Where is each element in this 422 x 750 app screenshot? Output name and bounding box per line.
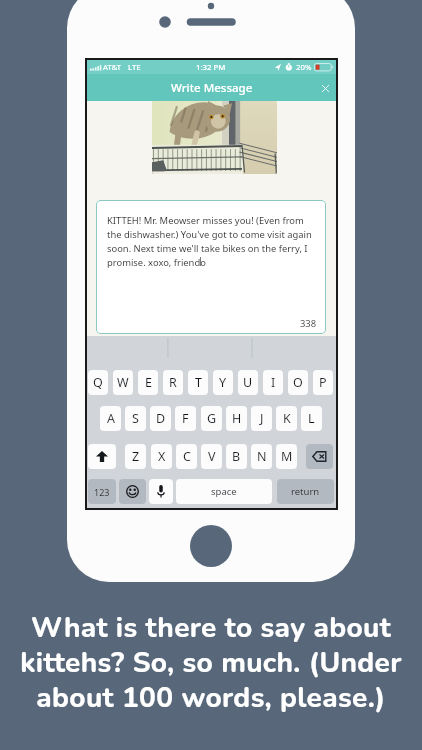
staticText: U: [243, 374, 253, 391]
button[interactable]: Shift: [88, 444, 116, 469]
button[interactable]: L: [301, 406, 322, 431]
staticText: E: [145, 374, 152, 391]
staticText: P: [319, 374, 327, 391]
staticText: J: [260, 410, 264, 427]
staticText: O: [293, 374, 303, 391]
staticText: KITTEH! Mr. Meowser misses you! (Even fr…: [107, 214, 312, 269]
staticText: space: [211, 485, 237, 498]
staticText: D: [156, 410, 166, 427]
staticText: L: [308, 410, 315, 427]
button[interactable]: D: [150, 406, 171, 431]
staticText: AT&T: [103, 62, 122, 73]
button[interactable]: X: [151, 444, 172, 469]
staticText: T: [195, 374, 202, 391]
staticText: return: [291, 485, 320, 498]
button[interactable]: Q: [88, 370, 108, 395]
button[interactable]: U: [238, 370, 258, 395]
button[interactable]: space: [176, 479, 272, 504]
button[interactable]: T: [188, 370, 208, 395]
button[interactable]: 123: [88, 479, 116, 504]
button[interactable]: B: [226, 444, 247, 469]
button[interactable]: I: [263, 370, 283, 395]
button[interactable]: S: [125, 406, 146, 431]
staticText: M: [281, 448, 293, 465]
button[interactable]: K: [276, 406, 297, 431]
staticText: W: [117, 374, 129, 391]
staticText: R: [169, 374, 177, 391]
staticText: B: [232, 448, 241, 465]
button[interactable]: J: [251, 406, 272, 431]
staticText: C: [183, 448, 191, 465]
staticText: X: [158, 448, 166, 465]
staticText: What is there to say about kittehs? So, …: [0, 609, 422, 717]
staticText: H: [232, 410, 242, 427]
button[interactable]: R: [163, 370, 183, 395]
button[interactable]: Backspace: [306, 444, 333, 469]
staticText: F: [182, 410, 189, 427]
staticText: 20%: [296, 62, 312, 73]
button[interactable]: M: [276, 444, 297, 469]
button[interactable]: Emoji: [119, 479, 146, 504]
staticText: Write Message: [171, 80, 253, 96]
staticText: Q: [93, 374, 103, 391]
button[interactable]: Close: [314, 77, 336, 99]
button[interactable]: N: [251, 444, 272, 469]
staticText: S: [132, 410, 139, 427]
staticText: 1:32 PM: [196, 62, 226, 73]
staticText: 123: [94, 486, 110, 498]
button[interactable]: return: [277, 479, 334, 504]
button[interactable]: C: [176, 444, 197, 469]
button[interactable]: A: [100, 406, 121, 431]
button[interactable]: Y: [213, 370, 233, 395]
button[interactable]: F: [175, 406, 196, 431]
staticText: 338: [300, 317, 317, 330]
staticText: V: [208, 448, 216, 465]
staticText: Y: [219, 374, 227, 391]
staticText: LTE: [128, 62, 141, 73]
button[interactable]: G: [201, 406, 222, 431]
button[interactable]: O: [288, 370, 308, 395]
button[interactable]: V: [201, 444, 222, 469]
staticText: G: [207, 410, 217, 427]
staticText: Z: [132, 448, 140, 465]
staticText: N: [257, 448, 267, 465]
button[interactable]: Dictate: [149, 479, 173, 504]
staticText: K: [283, 410, 291, 427]
button[interactable]: W: [113, 370, 133, 395]
staticText: A: [107, 410, 115, 427]
button[interactable]: E: [138, 370, 158, 395]
staticText: I: [271, 374, 276, 391]
button[interactable]: P: [313, 370, 333, 395]
button[interactable]: H: [226, 406, 247, 431]
button[interactable]: Z: [125, 444, 146, 469]
